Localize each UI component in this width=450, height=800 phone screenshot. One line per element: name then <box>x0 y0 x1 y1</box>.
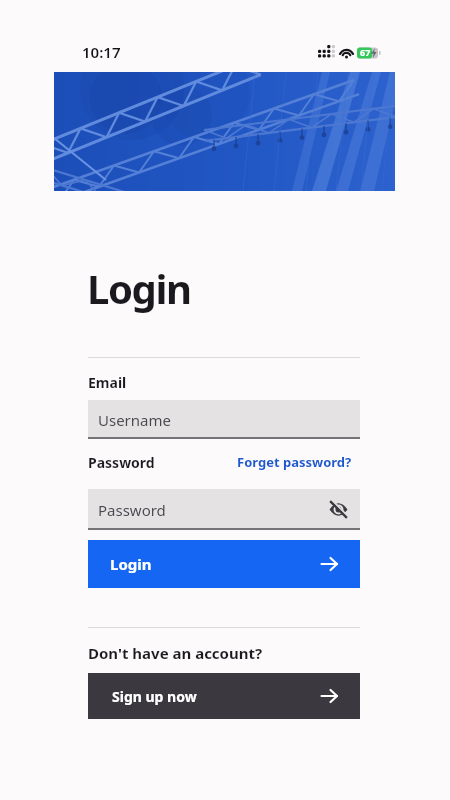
button[interactable]: Sign up now <box>88 673 360 719</box>
button[interactable]: Password <box>88 489 360 530</box>
staticText: Login <box>110 554 152 574</box>
staticText: 10:17 <box>82 42 121 62</box>
staticText: Password <box>98 500 166 520</box>
button[interactable]: Forget password? <box>237 453 352 471</box>
staticText: Don't have an account? <box>88 643 263 663</box>
button[interactable]: Login <box>88 540 360 588</box>
staticText: Password <box>88 453 155 472</box>
button[interactable]: Username <box>88 400 360 439</box>
staticText: Sign up now <box>112 687 197 706</box>
staticText: Login <box>87 261 191 315</box>
staticText: 67 <box>360 46 371 58</box>
staticText: Forget password? <box>237 453 352 471</box>
staticText: Email <box>88 373 127 392</box>
staticText: Username <box>98 410 171 430</box>
